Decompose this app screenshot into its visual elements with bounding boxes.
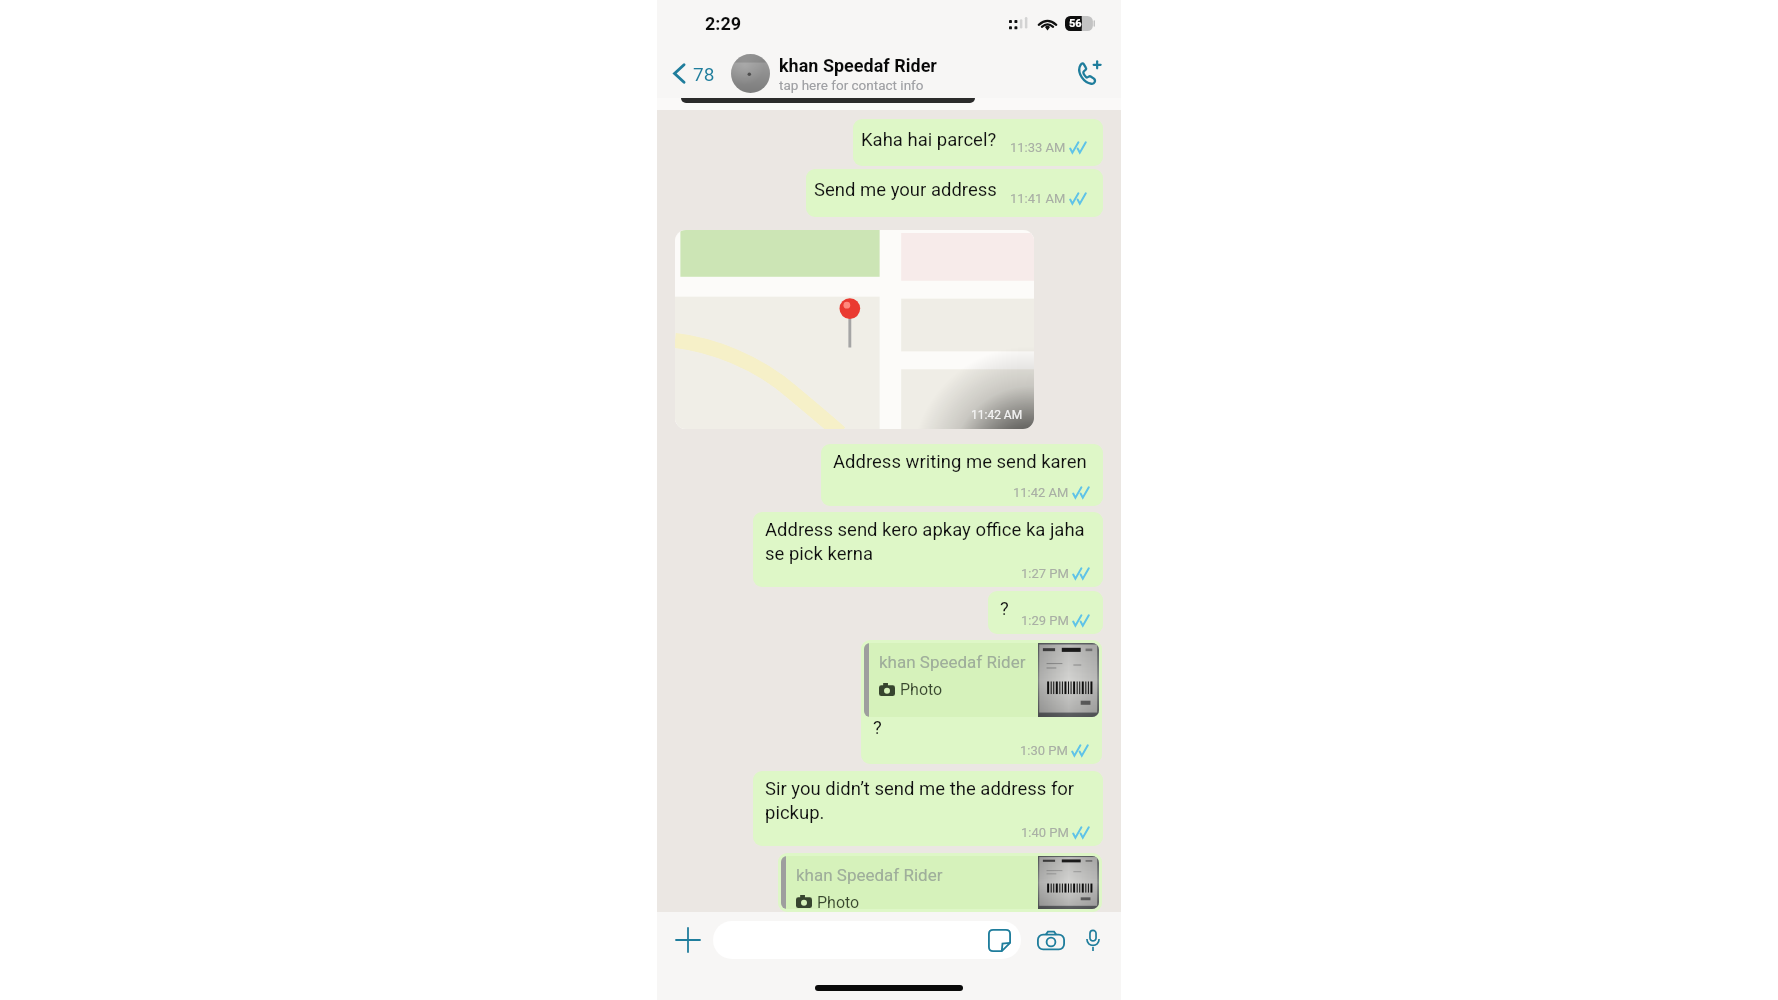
button[interactable]: Contact photo <box>731 54 1071 93</box>
button[interactable]: Address send kero apkay office ka jaha s… <box>753 512 1103 587</box>
button[interactable]: Sir you didn’t send me the address for p… <box>753 771 1103 846</box>
other: Contact photo <box>731 54 770 93</box>
staticText: 11:42 AM <box>971 408 1023 422</box>
staticText: Photo <box>900 680 943 699</box>
button[interactable]: Address writing me send karen <box>821 444 1103 506</box>
staticText: Address writing me send karen <box>833 451 1087 473</box>
button[interactable]: Attach <box>671 923 705 957</box>
button[interactable]: Stickers <box>988 929 1011 952</box>
staticText: 1:30 PM <box>1020 743 1068 758</box>
staticText: Kaha hai parcel? <box>861 129 997 151</box>
button[interactable]: Voice message <box>1079 926 1107 954</box>
staticText: 78 <box>693 63 715 85</box>
staticText: 1:29 PM <box>1021 613 1069 628</box>
staticText: ? <box>1000 598 1009 620</box>
staticText: ? <box>873 717 882 739</box>
button[interactable]: Kaha hai parcel? <box>853 119 1103 166</box>
staticText: Address send kero apkay office ka jaha s… <box>765 519 1093 565</box>
button[interactable]: khan Speedaf Rider <box>778 853 1102 912</box>
button[interactable]: Send me your address <box>806 169 1103 217</box>
staticText: tap here for contact info <box>779 77 924 93</box>
button[interactable]: ? <box>988 591 1103 634</box>
button[interactable]: Back to chats, 78 unread <box>669 56 719 91</box>
staticText: khan Speedaf Rider <box>779 55 937 76</box>
staticText: 1:40 PM <box>1021 825 1069 840</box>
button[interactable]: khan Speedaf Rider <box>861 640 1102 764</box>
staticText: 11:33 AM <box>1010 140 1066 155</box>
staticText: 2:29 <box>705 13 742 34</box>
staticText: Photo <box>817 893 860 909</box>
staticText: 11:42 AM <box>1013 485 1069 500</box>
staticText: Send me your address <box>814 179 997 201</box>
staticText: khan Speedaf Rider <box>879 652 1026 672</box>
staticText: 1:27 PM <box>1021 566 1069 581</box>
button[interactable]: Camera <box>1035 924 1067 956</box>
staticText: Sir you didn’t send me the address for p… <box>765 778 1093 824</box>
staticText: khan Speedaf Rider <box>796 865 943 885</box>
staticText: 56 <box>1069 17 1082 30</box>
staticText: 11:41 AM <box>1010 191 1066 206</box>
button[interactable]: Location photo <box>675 230 1034 429</box>
button[interactable]: Voice call <box>1071 56 1105 90</box>
button[interactable]: Message <box>713 921 1021 959</box>
